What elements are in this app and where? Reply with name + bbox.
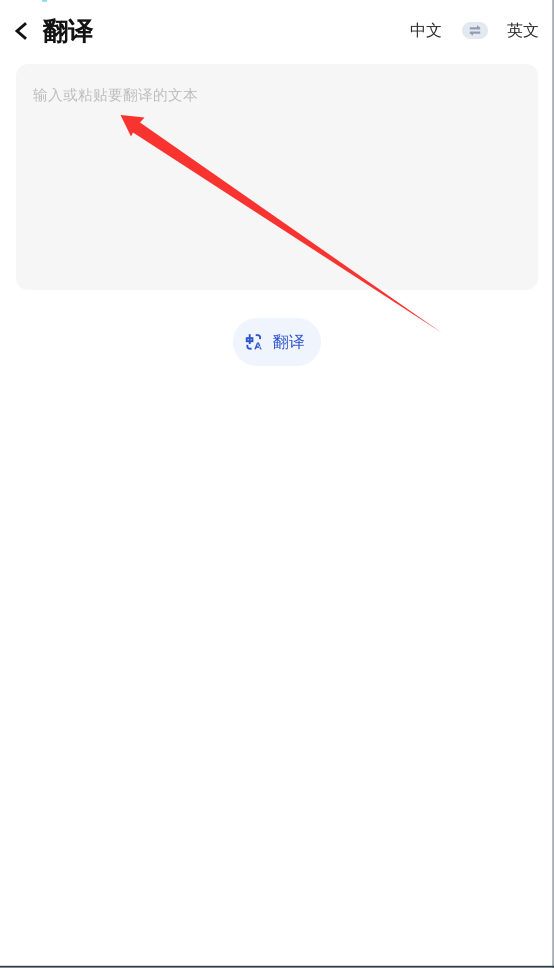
staticText: 中文: [410, 21, 442, 40]
staticText: 翻译: [273, 332, 305, 352]
button[interactable]: 翻译: [233, 318, 321, 366]
button[interactable]: 英文: [500, 0, 546, 61]
button[interactable]: 输入或粘贴要翻译的文本: [16, 64, 538, 290]
staticText: 翻译: [42, 16, 92, 47]
staticText: 输入或粘贴要翻译的文本: [33, 86, 198, 104]
button[interactable]: 中文: [402, 0, 450, 61]
staticText: 英文: [507, 21, 539, 40]
button[interactable]: 返回: [0, 0, 41, 61]
button[interactable]: 交换语言: [450, 0, 500, 61]
